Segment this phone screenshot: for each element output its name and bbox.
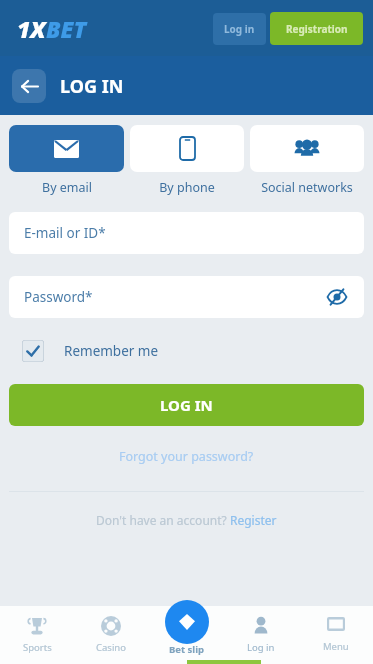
staticText: Registration [286, 22, 348, 36]
button[interactable]: E-mail or ID* [9, 212, 364, 254]
button[interactable]: Log in [223, 606, 298, 664]
staticText: 1X [17, 13, 46, 44]
staticText: Sports [23, 641, 52, 654]
staticText: BET [46, 13, 87, 44]
button[interactable]: Password* [9, 276, 364, 318]
button[interactable]: Forgot your password? [119, 448, 254, 465]
staticText: E-mail or ID* [24, 224, 106, 242]
staticText: Log in [247, 641, 275, 654]
staticText: LOG IN [60, 74, 124, 99]
staticText: Forgot your password? [119, 448, 254, 465]
staticText: By email [42, 179, 92, 196]
staticText: Log in [224, 22, 255, 36]
button[interactable]: Register [230, 512, 277, 528]
staticText: Password* [24, 288, 93, 306]
button[interactable]: Registration [270, 12, 363, 45]
staticText: LOG IN [160, 395, 213, 415]
button[interactable]: Remember me [22, 340, 159, 362]
button[interactable]: By phone [130, 125, 244, 196]
button[interactable]: Show password [324, 284, 350, 310]
staticText: Menu [323, 640, 349, 653]
button[interactable]: By email [9, 125, 124, 196]
button[interactable]: Menu [298, 606, 373, 664]
staticText: Bet slip [169, 643, 205, 656]
button[interactable]: LOG IN [9, 384, 364, 426]
staticText: Social networks [261, 179, 353, 196]
staticText: Register [230, 512, 277, 528]
staticText: Remember me [64, 342, 159, 360]
staticText: Don't have an account? [96, 512, 230, 528]
staticText: Casino [96, 641, 126, 654]
button[interactable]: Back [12, 69, 46, 103]
button[interactable]: Bet slip [165, 600, 209, 644]
button[interactable]: Social networks [250, 125, 364, 196]
staticText: By phone [159, 179, 215, 196]
button[interactable]: Sports [0, 606, 74, 664]
button[interactable]: Log in [213, 13, 266, 45]
button[interactable]: Casino [74, 606, 148, 664]
